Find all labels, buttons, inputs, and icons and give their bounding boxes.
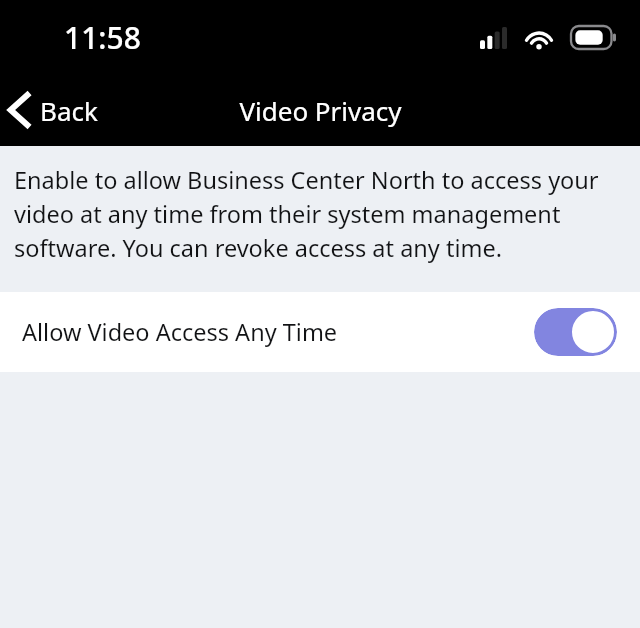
button[interactable]: Allow Video Access Any Time toggle [534,308,617,356]
staticText: Allow Video Access Any Time [22,316,338,348]
staticText: Back [40,93,98,128]
staticText: 11:58 [64,17,141,58]
staticText: Video Privacy [239,93,402,128]
button[interactable]: Allow Video Access Any Time [0,292,640,372]
button[interactable]: Back [0,74,110,146]
other: Back [8,93,30,127]
staticText: Enable to allow Business Center North to… [14,164,628,264]
